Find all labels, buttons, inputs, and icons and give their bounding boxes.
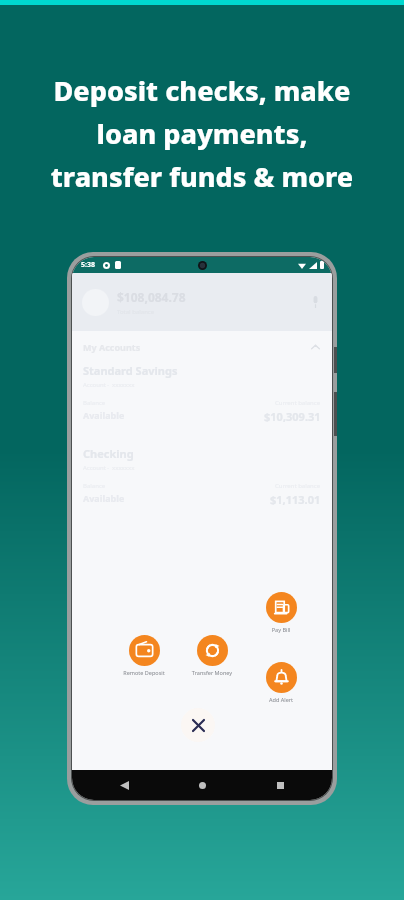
staticText: Checking — [83, 446, 134, 461]
staticText: Available — [83, 492, 125, 504]
staticText: Add Alert — [248, 696, 314, 703]
staticText: $10,309.31 — [264, 409, 321, 424]
button[interactable]: Remote Deposit — [111, 635, 177, 676]
button[interactable]: Recents — [268, 773, 292, 797]
staticText: Account · xxxxxxx — [83, 381, 135, 389]
staticText: loan payments, — [14, 115, 390, 152]
staticText: Current balance — [275, 399, 321, 407]
staticText: Transfer Money — [179, 669, 245, 676]
staticText: Deposit checks, make — [14, 72, 390, 109]
staticText: transfer funds & more — [14, 158, 390, 195]
staticText: $1,113.01 — [270, 492, 321, 507]
staticText: Balance — [83, 399, 106, 407]
button[interactable]: Home — [190, 773, 214, 797]
button[interactable]: Back — [112, 773, 136, 797]
button[interactable]: Transfer Money — [179, 635, 245, 676]
staticText: Available — [83, 409, 125, 421]
button[interactable]: Add Alert — [248, 662, 314, 703]
button[interactable]: Pay Bill — [248, 592, 314, 633]
staticText: Balance — [83, 482, 106, 490]
staticText: Account · xxxxxxx — [83, 464, 135, 472]
staticText: Pay Bill — [248, 626, 314, 633]
staticText: My Accounts — [83, 341, 141, 353]
staticText: Remote Deposit — [111, 669, 177, 676]
staticText: $108,084.78 — [117, 289, 186, 305]
button[interactable]: Close — [181, 708, 215, 742]
staticText: Current balance — [275, 482, 321, 490]
staticText: 5:38 — [81, 260, 95, 270]
staticText: Standard Savings — [83, 363, 178, 378]
